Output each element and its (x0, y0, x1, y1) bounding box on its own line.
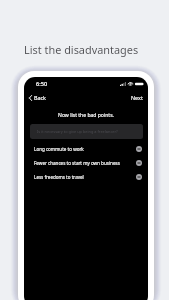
other: Remove item (136, 160, 142, 166)
button[interactable]: Back (27, 92, 48, 103)
staticText: Now list the bad points. (24, 112, 148, 119)
staticText: Next (131, 94, 143, 101)
button[interactable]: Fewer chances to start my own business (24, 156, 148, 170)
staticText: Long commute to work (34, 146, 84, 152)
staticText: Fewer chances to start my own business (34, 160, 120, 166)
staticText: List the disadvantages (24, 42, 139, 57)
staticText: Less freedoms to travel (34, 174, 84, 180)
button[interactable]: Is it necessary to give up being a freel… (30, 124, 143, 139)
other: Remove item (136, 146, 142, 152)
staticText: Back (34, 94, 46, 101)
other: Remove item (136, 174, 142, 180)
button[interactable]: Less freedoms to travel (24, 170, 148, 184)
button[interactable]: Long commute to work (24, 142, 148, 156)
staticText: Is it necessary to give up being a freel… (37, 129, 118, 134)
button[interactable]: Next (129, 92, 145, 103)
staticText: 6:50 (36, 80, 48, 88)
